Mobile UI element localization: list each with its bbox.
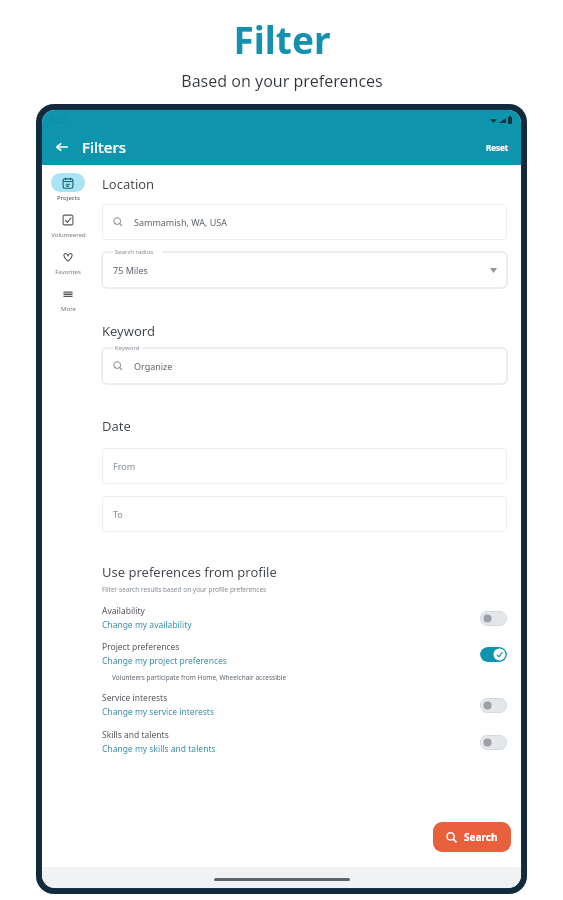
staticText: Filter: [233, 14, 331, 64]
staticText: From: [113, 460, 136, 472]
button[interactable]: Projects: [42, 171, 94, 204]
button[interactable]: Availability: [102, 605, 507, 631]
staticText: Change my availability: [102, 619, 192, 631]
staticText: Keyword: [102, 322, 155, 340]
staticText: Search: [464, 830, 498, 844]
button[interactable]: Back: [48, 133, 76, 161]
button[interactable]: Skills and talents: [102, 729, 507, 755]
staticText: More: [61, 305, 76, 313]
staticText: Projects: [57, 194, 80, 202]
button[interactable]: Sammamish, WA, USA: [102, 204, 507, 240]
button[interactable]: To: [102, 496, 507, 532]
staticText: Date: [102, 417, 131, 435]
button[interactable]: [102, 252, 507, 288]
staticText: To: [113, 508, 123, 520]
staticText: Based on your preferences: [181, 70, 383, 92]
staticText: Availability: [102, 605, 145, 617]
staticText: Service interests: [102, 692, 168, 704]
staticText: Volunteers participate from Home, Wheelc…: [112, 673, 287, 682]
staticText: 75 Miles: [113, 264, 148, 276]
staticText: Search radius: [115, 248, 154, 256]
staticText: Volunteered: [51, 231, 86, 239]
staticText: Change my skills and talents: [102, 743, 216, 755]
staticText: Keyword: [115, 344, 140, 352]
button[interactable]: Volunteered: [42, 208, 94, 241]
staticText: Project preferences: [102, 641, 180, 653]
staticText: Filters: [82, 137, 127, 157]
staticText: Filter search results based on your prof…: [102, 585, 267, 594]
staticText: Skills and talents: [102, 729, 169, 741]
staticText: Organize: [134, 360, 173, 372]
staticText: Location: [102, 175, 155, 193]
button[interactable]: Project preferences: [102, 641, 507, 667]
staticText: Sammamish, WA, USA: [134, 216, 228, 228]
button[interactable]: Toggle on: [480, 647, 507, 662]
button[interactable]: Search: [433, 822, 511, 852]
button[interactable]: More: [42, 282, 94, 315]
button[interactable]: Service interests: [102, 692, 507, 718]
staticText: Favorites: [55, 268, 81, 276]
staticText: Reset: [486, 142, 509, 153]
button[interactable]: Toggle off: [480, 698, 507, 713]
button[interactable]: Toggle off: [480, 735, 507, 750]
button[interactable]: Toggle off: [480, 611, 507, 626]
button[interactable]: From: [102, 448, 507, 484]
button[interactable]: Favorites: [42, 245, 94, 278]
staticText: Change my project preferences: [102, 655, 227, 667]
staticText: Change my service interests: [102, 706, 214, 718]
staticText: Use preferences from profile: [102, 563, 277, 581]
button[interactable]: [102, 348, 507, 384]
button[interactable]: Reset: [478, 138, 517, 157]
